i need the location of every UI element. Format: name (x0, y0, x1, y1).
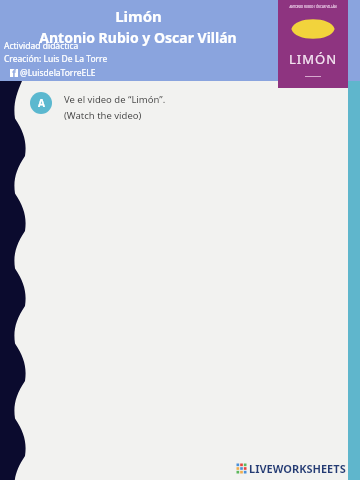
staticText: A (38, 96, 45, 110)
staticText: Creación: Luis De La Torre (4, 53, 108, 65)
button[interactable]: Liveworksheets logo (236, 461, 346, 476)
other: Liveworksheets logo (236, 463, 247, 474)
staticText: Actividad didáctica (4, 40, 79, 52)
staticText: Limón (115, 6, 162, 26)
staticText: Ve el video de “Limón”. (64, 93, 166, 106)
other: Facebook (10, 69, 18, 77)
staticText: (Watch the video) (64, 109, 142, 122)
staticText: LIVEWORKSHEETS (249, 461, 346, 476)
staticText: LIMÓN (289, 50, 338, 68)
button[interactable]: A (30, 92, 166, 122)
staticText: @LuisdelaTorreELE (20, 67, 96, 79)
staticText: Antonio Rubio y Oscar Villán (39, 28, 237, 47)
staticText: ANTONIO RUBIO / ÓSCAR VILLÁN (289, 5, 337, 9)
